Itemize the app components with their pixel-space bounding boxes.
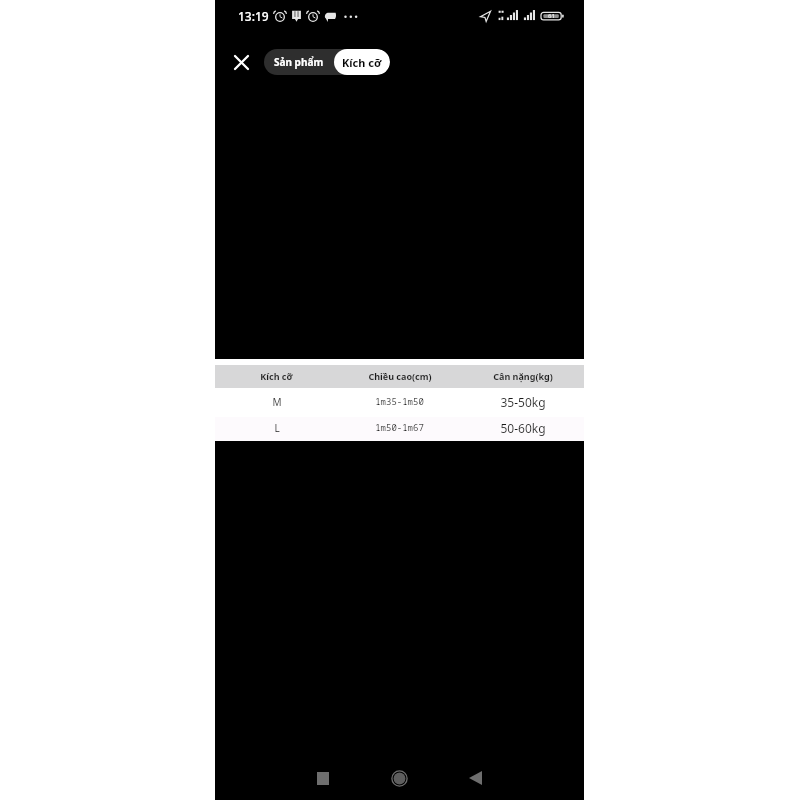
staticText: L xyxy=(274,421,280,435)
staticText: Chiều cao(cm) xyxy=(368,370,432,382)
staticText: 1m35-1m50 xyxy=(375,395,424,407)
button[interactable]: Kích cỡ xyxy=(334,49,390,75)
staticText: Cân nặng(kg) xyxy=(493,370,553,382)
staticText: 50-60kg xyxy=(500,420,546,436)
staticText: 1m50-1m67 xyxy=(375,421,424,433)
staticText: 61 xyxy=(548,12,555,20)
staticText: Sản phẩm xyxy=(274,55,324,69)
staticText: Kích cỡ xyxy=(260,370,293,382)
staticText: Kích cỡ xyxy=(342,55,382,70)
staticText: M xyxy=(272,395,282,409)
button[interactable]: Recents xyxy=(299,760,347,796)
staticText: 13:19 xyxy=(238,8,269,24)
button[interactable]: Home xyxy=(375,760,423,796)
button[interactable]: Close xyxy=(223,44,259,80)
button[interactable]: Back xyxy=(451,760,499,796)
staticText: 35-50kg xyxy=(500,394,546,410)
button[interactable]: Sản phẩm xyxy=(264,49,334,75)
